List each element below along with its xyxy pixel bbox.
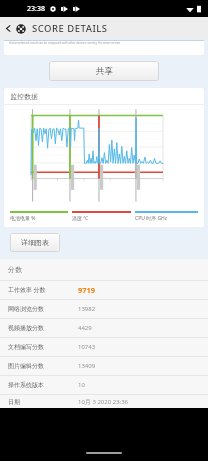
button[interactable]: 图片编辑分数 [0, 357, 208, 375]
staticText: 操作系统版本 [8, 381, 78, 389]
staticText: SCORE DETAILS [32, 22, 108, 35]
staticText: 23:38 [27, 4, 45, 14]
staticText: 共享 [96, 66, 113, 77]
button[interactable]: 视频播放分数 [0, 319, 208, 337]
staticText: 视频播放分数 [8, 324, 78, 332]
staticText: CPU 时序 GHz [135, 215, 198, 222]
button[interactable]: 文档编写分数 [0, 338, 208, 356]
staticText: 电池电量 % [10, 215, 72, 222]
button[interactable]: 网络浏览分数 [0, 300, 208, 318]
staticText: 10743 [78, 343, 96, 351]
staticText: 分数 [8, 265, 22, 274]
button[interactable]: 日期 [0, 395, 208, 408]
staticText: 9719 [78, 285, 96, 295]
button[interactable]: Back [2, 22, 15, 35]
staticText: 工作效率 分数 [8, 286, 78, 294]
staticText: 文档编写分数 [8, 343, 78, 351]
staticText: 13409 [78, 362, 96, 370]
staticText: 10月 3 2020 23:36 [78, 398, 129, 406]
staticText: 日期 [8, 398, 78, 406]
button[interactable]: 共享 [49, 61, 159, 81]
staticText: 温度 ℃ [72, 215, 135, 222]
staticText: 监控数据 [10, 92, 38, 101]
staticText: 详细图表 [21, 238, 49, 247]
staticText: 10 [78, 381, 85, 389]
staticText: 图片编辑分数 [8, 362, 78, 370]
button[interactable]: 详细图表 [10, 233, 60, 252]
staticText: this benchmark result can be compared wi… [9, 41, 121, 45]
button[interactable]: 操作系统版本 [0, 376, 208, 394]
staticText: 13982 [78, 305, 96, 313]
staticText: 4429 [78, 324, 92, 332]
button[interactable]: 工作效率 分数 [0, 281, 208, 299]
staticText: 网络浏览分数 [8, 305, 78, 313]
